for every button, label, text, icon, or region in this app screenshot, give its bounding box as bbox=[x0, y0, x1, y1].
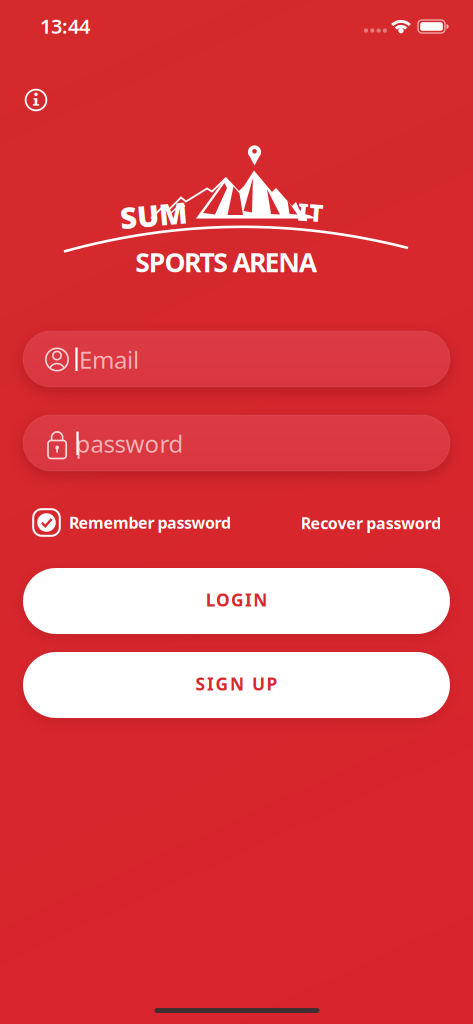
button[interactable]: Info bbox=[19, 83, 53, 117]
staticText: Remember password bbox=[69, 512, 231, 533]
staticText: Email bbox=[79, 343, 139, 375]
staticText: Recover password bbox=[301, 512, 441, 534]
button[interactable]: Password bbox=[23, 415, 450, 471]
staticText: password bbox=[75, 427, 183, 459]
staticText: IT bbox=[298, 196, 323, 228]
button[interactable]: LOGIN bbox=[23, 568, 450, 634]
button[interactable]: SIGN UP bbox=[23, 652, 450, 718]
staticText: SPORTS ARENA bbox=[135, 244, 317, 280]
button[interactable]: Email bbox=[23, 331, 450, 387]
staticText: LOGIN bbox=[206, 588, 267, 611]
button[interactable]: Remember password bbox=[32, 507, 264, 537]
staticText: 13:44 bbox=[40, 13, 90, 39]
staticText: SUM bbox=[120, 195, 187, 234]
staticText: SIGN UP bbox=[195, 672, 277, 695]
button[interactable]: Recover password bbox=[301, 512, 441, 534]
